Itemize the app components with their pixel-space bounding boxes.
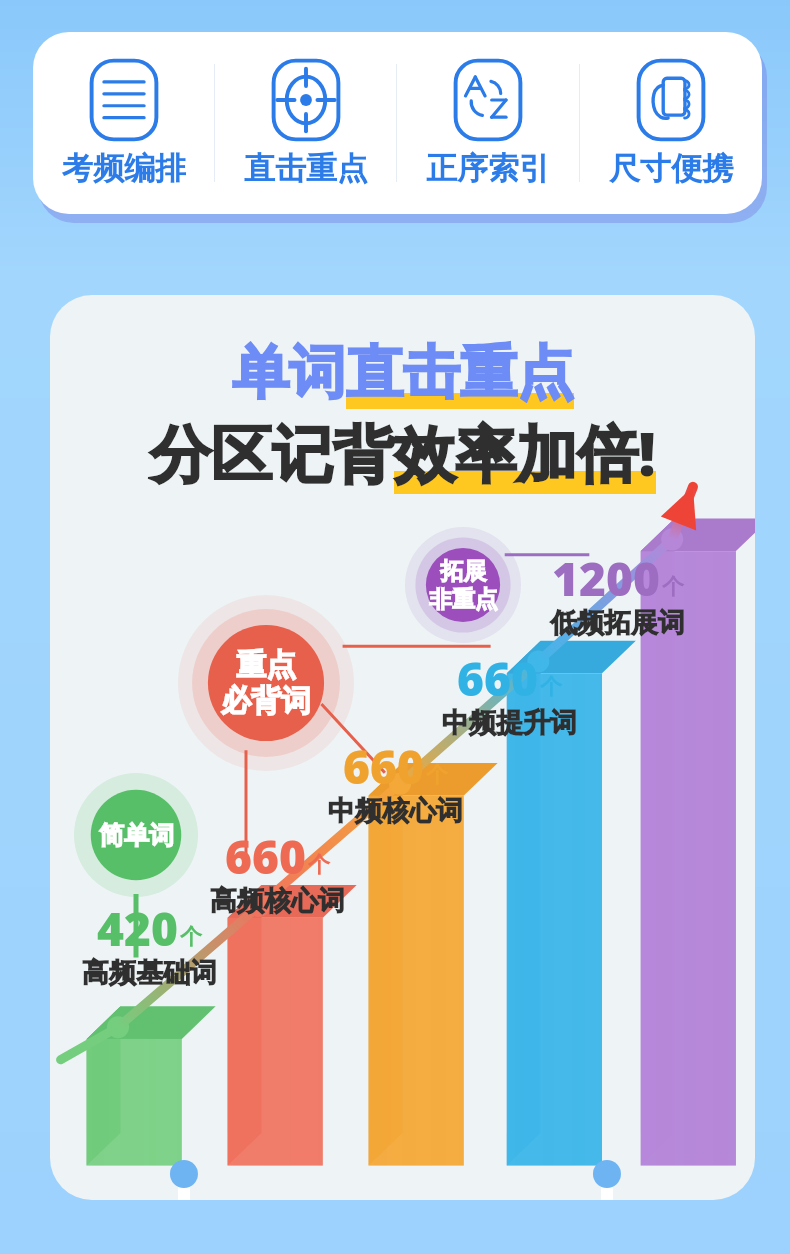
- staticText: 直击重点: [346, 337, 574, 409]
- staticText: 1200: [552, 547, 660, 610]
- staticText: 个: [180, 923, 202, 951]
- staticText: 高频核心词: [210, 884, 345, 918]
- staticText: 分区记背: [150, 417, 394, 494]
- staticText: 正序索引: [426, 149, 550, 188]
- staticText: 尺寸便携: [609, 149, 733, 188]
- button[interactable]: 尺寸便携: [580, 32, 762, 214]
- button[interactable]: 考频编排: [33, 32, 214, 214]
- staticText: 个: [662, 573, 684, 601]
- other: 尺寸便携: [630, 59, 712, 141]
- staticText: 直击重点: [244, 149, 368, 188]
- staticText: 低频拓展词: [550, 606, 685, 640]
- staticText: 考频编排: [62, 149, 186, 188]
- staticText: 单词: [232, 337, 346, 409]
- staticText: 个: [308, 851, 330, 879]
- staticText: 效率加倍!: [394, 411, 656, 494]
- other: 直击重点: [265, 59, 347, 141]
- staticText: 高频基础词: [82, 956, 217, 990]
- staticText: 中频提升词: [442, 706, 577, 740]
- staticText: 简单词: [99, 820, 174, 851]
- button[interactable]: 正序索引: [397, 32, 579, 214]
- other: 正序索引: [447, 59, 529, 141]
- staticText: 重点 必背词: [221, 646, 311, 720]
- staticText: 420: [97, 897, 178, 960]
- staticText: 660: [343, 735, 424, 798]
- staticText: 中频核心词: [328, 794, 463, 828]
- staticText: 个: [540, 673, 562, 701]
- staticText: 660: [457, 647, 538, 710]
- staticText: 个: [426, 761, 448, 789]
- staticText: 拓展 非重点: [429, 557, 498, 613]
- other: 考频编排: [83, 59, 165, 141]
- button[interactable]: 直击重点: [215, 32, 396, 214]
- staticText: 660: [225, 825, 306, 888]
